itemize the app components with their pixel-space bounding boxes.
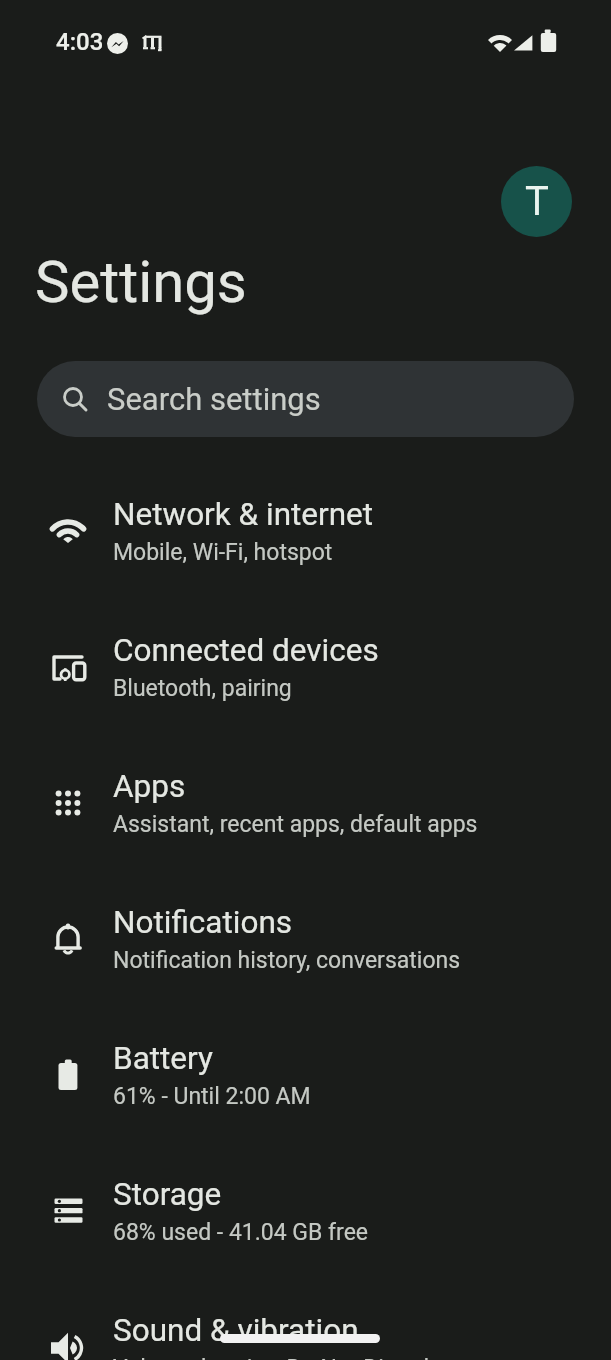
button[interactable]: Battery xyxy=(0,1007,611,1143)
staticText: Notifications xyxy=(113,904,293,941)
staticText: 61% - Until 2:00 AM xyxy=(113,1083,311,1110)
staticText: Search settings xyxy=(107,381,321,417)
staticText: 4:03 xyxy=(56,28,104,56)
staticText: Notification history, conversations xyxy=(113,947,461,974)
button[interactable]: Notifications xyxy=(0,871,611,1007)
staticText: Mobile, Wi-Fi, hotspot xyxy=(113,539,333,566)
button[interactable]: Sound & vibration xyxy=(0,1279,611,1360)
staticText: Bluetooth, pairing xyxy=(113,675,292,702)
staticText: Volume, haptics, Do Not Disturb xyxy=(113,1355,437,1360)
staticText: T xyxy=(525,178,549,225)
staticText: Storage xyxy=(113,1176,222,1213)
button[interactable]: Apps xyxy=(0,735,611,871)
staticText: Settings xyxy=(35,248,247,316)
staticText: Apps xyxy=(113,768,186,805)
staticText: Sound & vibration xyxy=(113,1312,359,1349)
staticText: Connected devices xyxy=(113,632,379,669)
button[interactable]: Connected devices xyxy=(0,599,611,735)
staticText: Network & internet xyxy=(113,496,374,533)
button[interactable]: Network & internet xyxy=(0,463,611,599)
button[interactable]: Storage xyxy=(0,1143,611,1279)
staticText: Assistant, recent apps, default apps xyxy=(113,811,478,838)
button[interactable]: T xyxy=(501,166,572,237)
staticText: Battery xyxy=(113,1040,213,1077)
button[interactable]: Search settings xyxy=(37,361,574,437)
staticText: 68% used - 41.04 GB free xyxy=(113,1219,369,1246)
